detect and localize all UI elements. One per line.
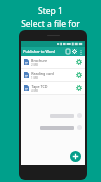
button[interactable]: Convert	[75, 84, 83, 92]
staticText: Publisher to Word	[23, 49, 55, 54]
button[interactable]: Settings	[71, 48, 78, 55]
button[interactable]: Device	[64, 48, 71, 55]
staticText: Select a file for conversion	[0, 18, 101, 30]
staticText: Brochure	[31, 58, 47, 63]
button[interactable]: Add file	[70, 151, 81, 162]
staticText: Step 1	[38, 5, 63, 17]
button[interactable]: Brochure	[21, 56, 85, 68]
staticText: Reading card	[31, 71, 54, 76]
staticText: 2 MB	[31, 63, 38, 67]
button[interactable]: More options	[78, 49, 84, 55]
button[interactable]: Tape TCD	[21, 82, 85, 94]
staticText: 4 MB	[31, 89, 38, 93]
staticText: Tape TCD	[31, 84, 48, 89]
button[interactable]: Convert	[75, 71, 83, 79]
button[interactable]	[50, 113, 82, 118]
button[interactable]: Reading card	[21, 69, 85, 81]
button[interactable]: Convert	[75, 58, 83, 66]
button[interactable]	[40, 125, 82, 130]
staticText: 1 MB	[31, 76, 38, 80]
